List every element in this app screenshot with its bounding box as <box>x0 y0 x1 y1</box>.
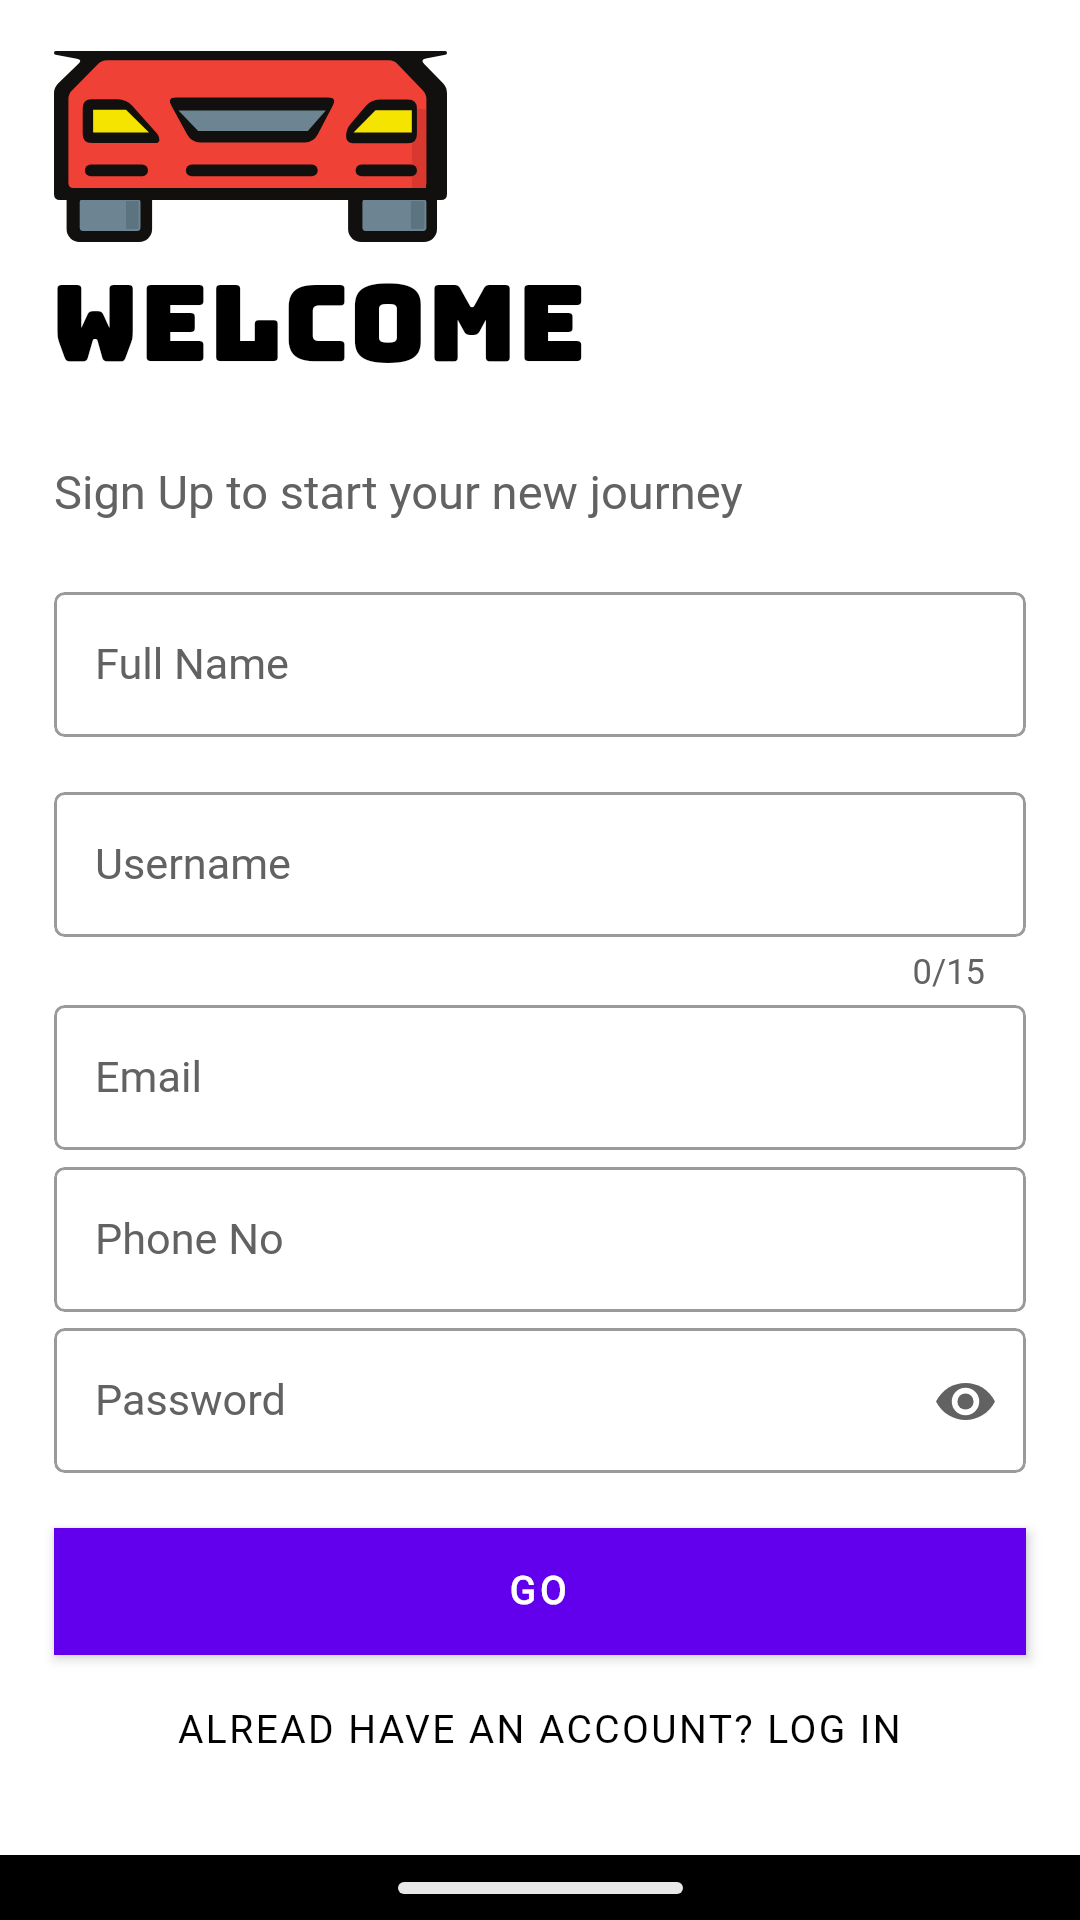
button[interactable]: Password <box>54 1328 1026 1473</box>
button[interactable]: Email <box>54 1005 1026 1150</box>
button[interactable]: Show password <box>929 1365 1001 1437</box>
button[interactable]: Phone No <box>54 1167 1026 1312</box>
staticText: Password <box>95 1375 286 1426</box>
staticText: 0/15 <box>54 952 985 992</box>
staticText: GO <box>510 1569 571 1614</box>
staticText: Email <box>95 1052 202 1103</box>
staticText: Phone No <box>95 1214 284 1265</box>
staticText: Full Name <box>95 639 290 690</box>
button[interactable]: ALREAD HAVE AN ACCOUNT? LOG IN <box>54 1707 1026 1753</box>
button[interactable]: Full Name <box>54 592 1026 737</box>
button[interactable]: GO <box>54 1528 1026 1655</box>
staticText: Sign Up to start your new journey <box>54 465 743 520</box>
staticText: Username <box>95 839 291 890</box>
staticText: ALREAD HAVE AN ACCOUNT? LOG IN <box>178 1707 903 1753</box>
button[interactable]: Username <box>54 792 1026 937</box>
staticText: WELCOME <box>51 253 587 393</box>
